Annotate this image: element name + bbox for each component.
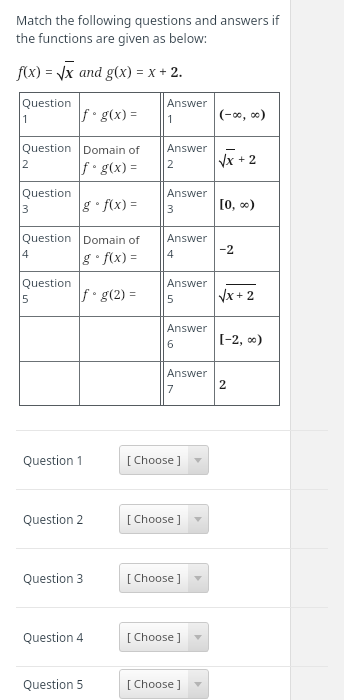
staticText: Question <box>22 140 72 156</box>
staticText: f <box>83 285 88 303</box>
staticText: [ Choose ] <box>127 629 181 645</box>
staticText: 5 <box>167 291 174 307</box>
button[interactable]: Question 3 <box>16 549 328 607</box>
staticText: g <box>83 195 91 213</box>
button[interactable]: Question 1 <box>16 431 328 489</box>
button[interactable]: Question 4 <box>16 608 328 666</box>
staticText: x <box>226 151 234 169</box>
staticText: 3 <box>167 201 174 217</box>
staticText: x <box>114 195 122 213</box>
staticText: ( <box>109 158 114 176</box>
staticText: g <box>101 105 109 123</box>
staticText: ) <box>122 105 127 123</box>
staticText: x <box>28 62 36 81</box>
staticText: [ Choose ] <box>127 511 181 527</box>
staticText: Match the following questions and answer… <box>16 12 280 47</box>
button[interactable]: Question 5 <box>16 667 328 700</box>
staticText: g <box>101 285 109 303</box>
staticText: 2 <box>167 156 174 172</box>
staticText: ( <box>109 105 114 123</box>
staticText: + 2 <box>236 286 255 304</box>
staticText: 3 <box>22 201 29 217</box>
staticText: Answer <box>167 365 208 381</box>
staticText: f <box>104 195 109 213</box>
staticText: x <box>119 62 127 81</box>
staticText: g <box>106 62 114 81</box>
staticText: g <box>101 158 109 176</box>
staticText: f <box>18 62 23 81</box>
staticText: (−∞, ∞) <box>219 105 266 123</box>
staticText: = <box>130 248 138 266</box>
staticText: = <box>130 158 138 176</box>
staticText: ∘ <box>92 161 97 173</box>
staticText: ∘ <box>92 108 97 120</box>
staticText: ( <box>114 62 119 81</box>
staticText: [0, ∞) <box>219 195 255 213</box>
staticText: ( <box>23 62 28 81</box>
staticText: Domain of <box>83 232 140 248</box>
staticText: Question <box>22 185 72 201</box>
staticText: Answer <box>167 320 208 336</box>
staticText: Answer <box>167 230 208 246</box>
staticText: and <box>79 63 102 81</box>
staticText: (2) <box>109 285 126 303</box>
staticText: 2 <box>22 156 29 172</box>
staticText: = <box>45 62 53 81</box>
staticText: ) <box>127 62 132 81</box>
staticText: [−2, ∞) <box>219 330 263 348</box>
staticText: f <box>104 248 109 266</box>
staticText: Question 5 <box>23 676 84 692</box>
staticText: Question 2 <box>23 511 84 527</box>
staticText: 1 <box>167 111 174 127</box>
staticText: = <box>136 62 144 81</box>
staticText: g <box>83 248 91 266</box>
staticText: Question 4 <box>23 629 84 645</box>
staticText: ) <box>122 158 127 176</box>
button[interactable]: [ Choose ] <box>119 563 209 593</box>
staticText: f <box>83 105 88 123</box>
staticText: Question <box>22 275 72 291</box>
staticText: Question <box>22 95 72 111</box>
staticText: x <box>65 63 74 82</box>
staticText: Answer <box>167 95 208 111</box>
staticText: Domain of <box>83 142 140 158</box>
staticText: = <box>129 285 137 303</box>
button[interactable]: [ Choose ] <box>119 622 209 652</box>
staticText: 7 <box>167 381 174 397</box>
staticText: = <box>130 105 138 123</box>
staticText: Answer <box>167 185 208 201</box>
staticText: −2 <box>219 240 234 258</box>
staticText: [ Choose ] <box>127 676 181 692</box>
staticText: Answer <box>167 140 208 156</box>
staticText: 2 <box>219 375 227 393</box>
staticText: x <box>114 248 122 266</box>
button[interactable]: Question 2 <box>16 490 328 548</box>
button[interactable]: [ Choose ] <box>119 504 209 534</box>
staticText: + 2. <box>159 62 183 81</box>
staticText: 5 <box>22 291 29 307</box>
staticText: ∘ <box>92 288 97 300</box>
staticText: 6 <box>167 336 174 352</box>
staticText: Question <box>22 230 72 246</box>
staticText: ( <box>109 195 114 213</box>
staticText: Answer <box>167 275 208 291</box>
staticText: ) <box>122 248 127 266</box>
staticText: ) <box>36 62 41 81</box>
staticText: x <box>114 105 122 123</box>
staticText: Question 1 <box>23 452 84 468</box>
button[interactable]: [ Choose ] <box>119 669 209 699</box>
staticText: ∘ <box>95 251 100 263</box>
staticText: Question 3 <box>23 570 84 586</box>
staticText: x <box>148 62 156 81</box>
staticText: + 2 <box>238 150 257 168</box>
staticText: ( <box>109 248 114 266</box>
staticText: x <box>226 286 234 304</box>
staticText: 4 <box>167 246 174 262</box>
staticText: = <box>130 195 138 213</box>
staticText: f <box>83 158 88 176</box>
staticText: [ Choose ] <box>127 570 181 586</box>
staticText: 4 <box>22 246 29 262</box>
staticText: ∘ <box>95 198 100 210</box>
button[interactable]: [ Choose ] <box>119 445 209 475</box>
staticText: ) <box>122 195 127 213</box>
